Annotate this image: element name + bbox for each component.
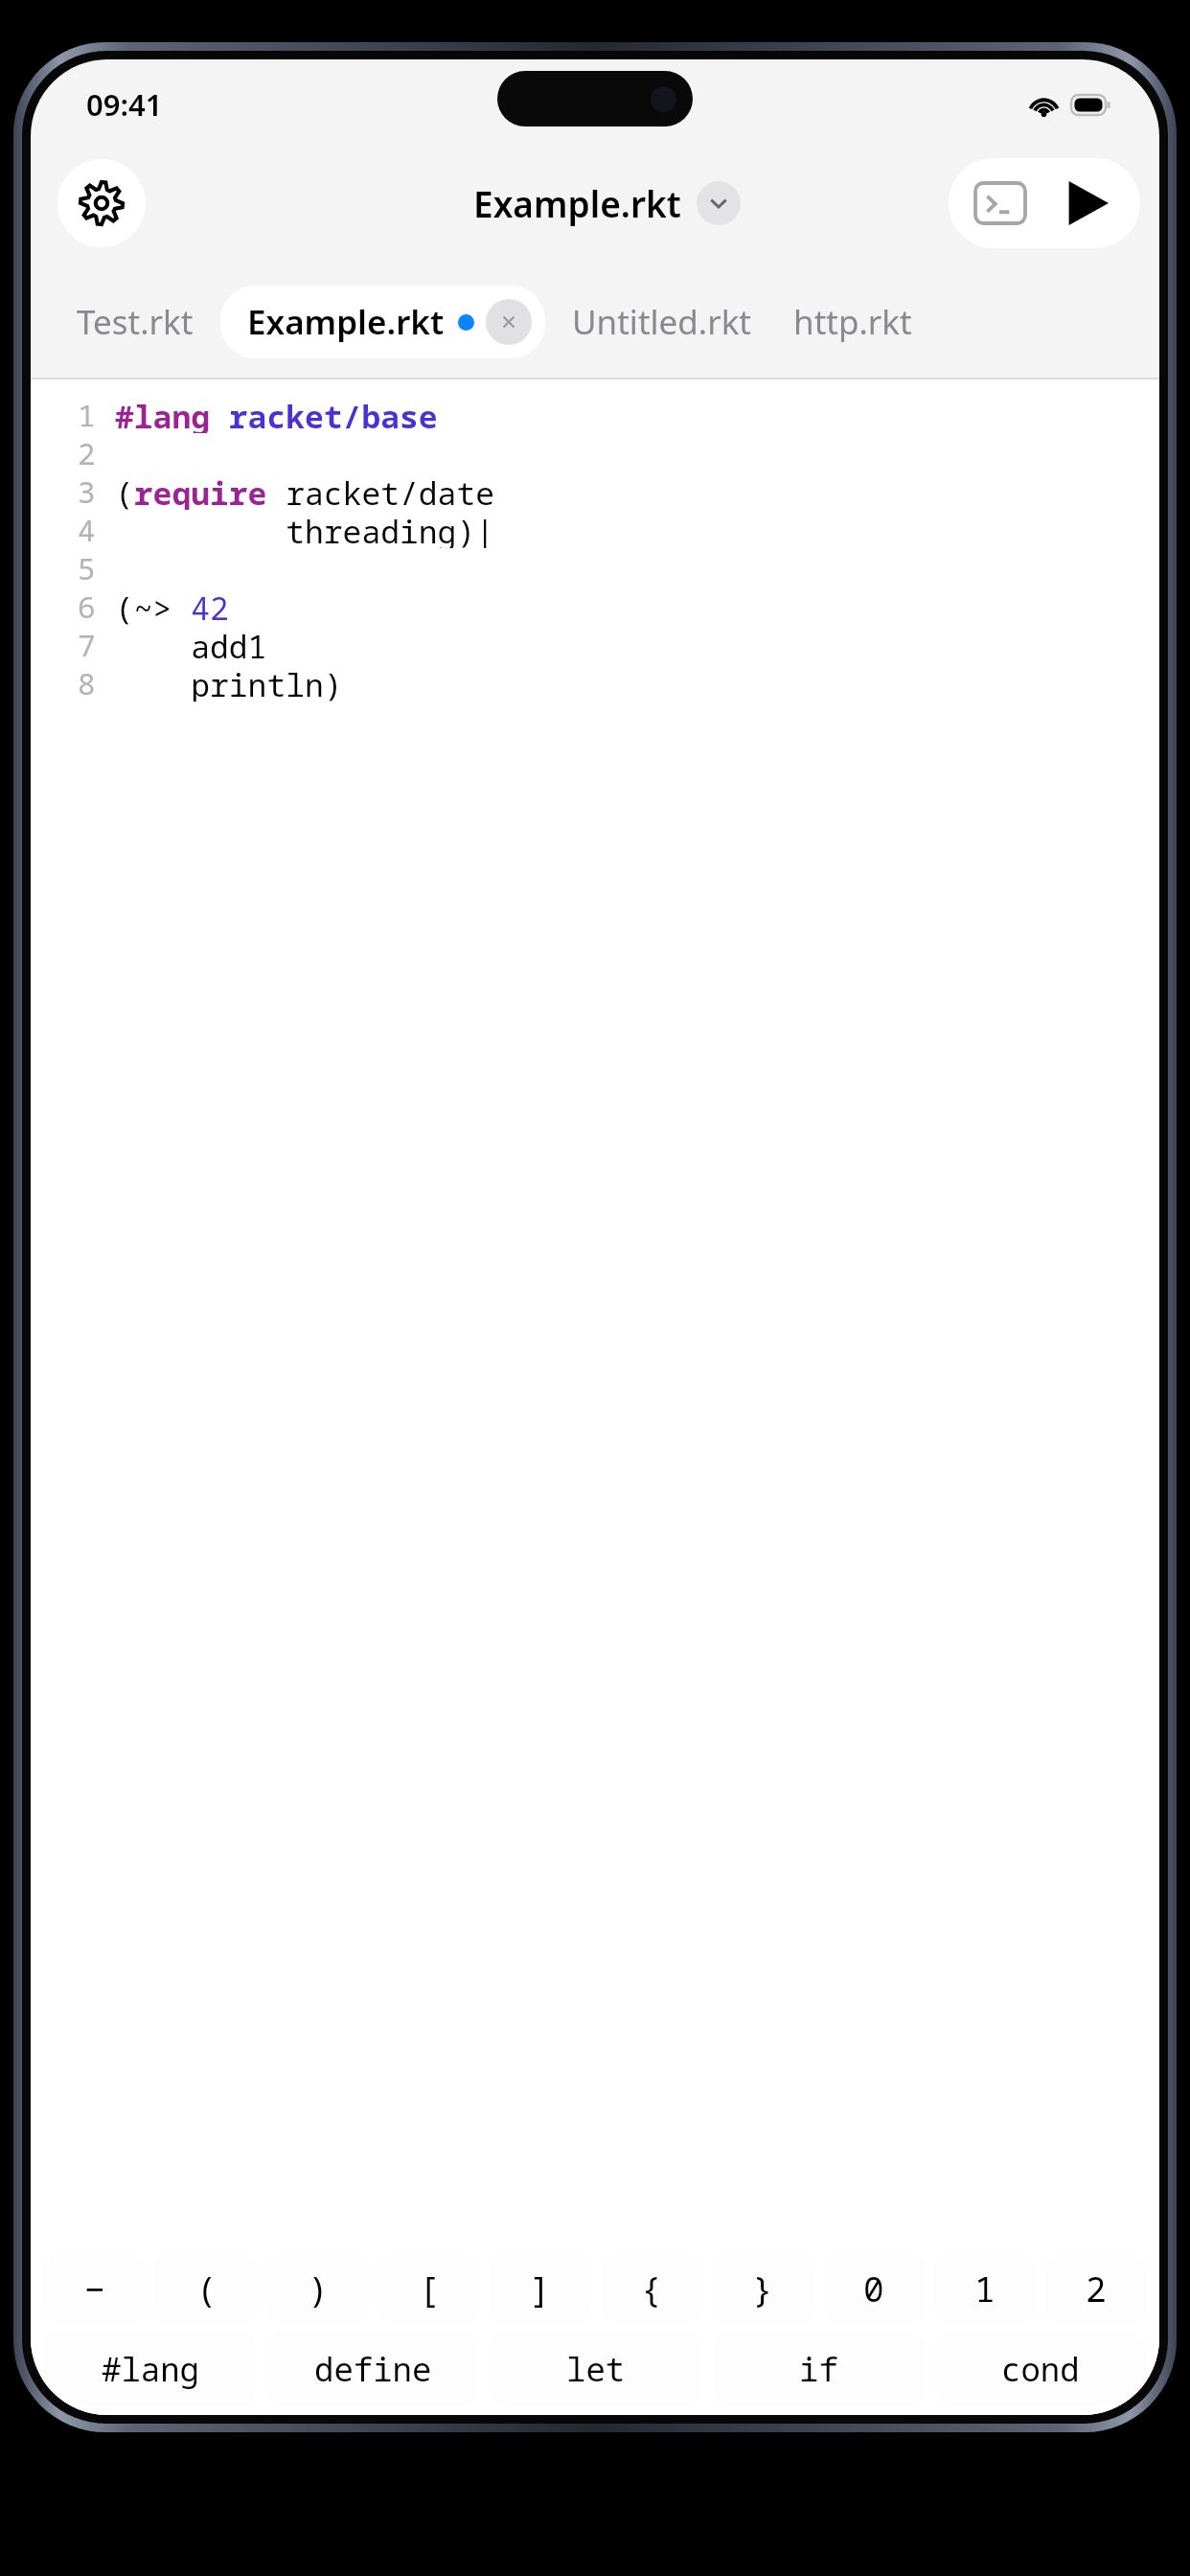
staticText: 2 [1086,2265,1107,2312]
staticText: 3 [78,471,96,510]
staticText: if [799,2347,838,2391]
staticText: Test.rkt [77,299,194,345]
staticText: 0 [863,2265,884,2312]
staticText: ( [196,2265,217,2312]
button[interactable]: } [712,2254,813,2323]
button[interactable]: ) [267,2254,369,2323]
staticText: { [641,2265,662,2312]
button[interactable]: http.rkt [780,282,926,362]
button[interactable]: let [491,2333,701,2405]
button[interactable]: { [601,2254,702,2323]
staticText: #lang racket/base [115,395,438,433]
staticText: } [752,2265,773,2312]
staticText: Example.rkt [247,299,445,345]
staticText: 2 [78,433,96,471]
staticText: (require racket/date [115,471,495,510]
staticText: 8 [78,663,96,701]
button[interactable]: Test.rkt [54,282,217,362]
staticText: Untitled.rkt [572,299,751,345]
staticText: 6 [78,586,96,625]
staticText: − [84,2265,105,2312]
staticText: http.rkt [793,299,912,345]
staticText: 1 [78,395,96,433]
button[interactable]: Run [1053,170,1120,237]
staticText: #lang [102,2347,199,2391]
button[interactable]: − [43,2254,146,2323]
button[interactable]: Close tab [486,299,532,345]
staticText: 09:41 [86,84,163,125]
staticText: 4 [78,510,96,548]
button[interactable]: 0 [823,2254,925,2323]
staticText: 5 [78,548,96,586]
button[interactable]: ] [490,2254,591,2323]
staticText: (~> 42 [115,586,229,625]
staticText: let [566,2347,626,2391]
button[interactable]: Example.rkt [468,173,746,233]
staticText: ] [530,2265,551,2312]
staticText: add1 [115,625,267,663]
button[interactable]: 2 [1045,2254,1147,2323]
button[interactable]: ( [155,2254,258,2323]
button[interactable]: #lang [44,2333,256,2405]
button[interactable]: [ [378,2254,480,2323]
button[interactable]: Untitled.rkt [555,282,768,362]
staticText: ) [308,2265,329,2312]
staticText: 1 [974,2265,995,2312]
staticText: threading)| [115,510,494,548]
staticText: 7 [78,625,96,663]
staticText: Example.rkt [473,179,681,227]
staticText: println) [115,663,343,701]
button[interactable]: if [713,2333,924,2405]
staticText: cond [1001,2347,1080,2391]
button[interactable]: define [267,2333,479,2405]
button[interactable]: Settings [57,159,146,247]
button[interactable]: Example.rkt [220,286,545,358]
button[interactable]: 1 [934,2254,1036,2323]
staticText: [ [419,2265,440,2312]
staticText: define [314,2347,432,2391]
button[interactable]: Console [969,172,1032,235]
button[interactable]: cond [935,2333,1146,2405]
